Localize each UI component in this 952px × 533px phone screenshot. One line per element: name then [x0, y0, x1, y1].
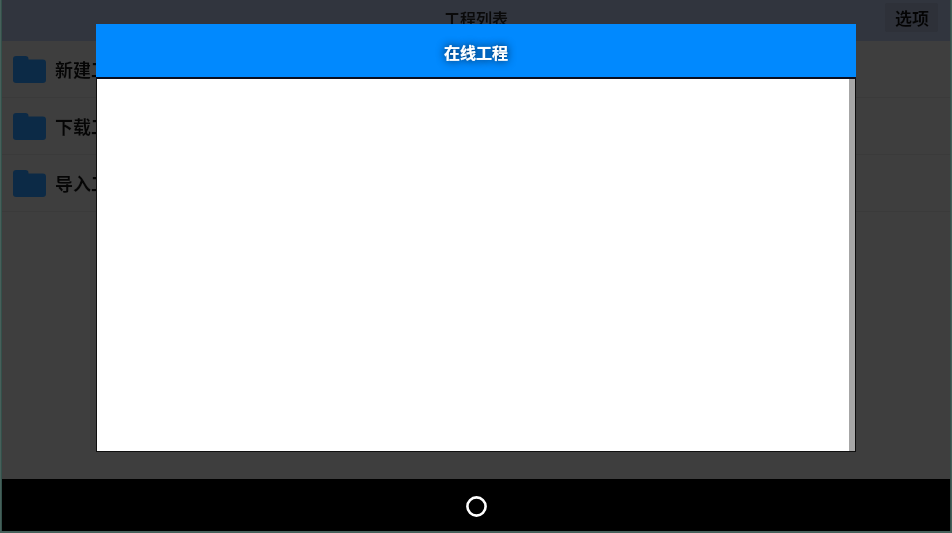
- staticText: 工程列表: [444, 6, 509, 29]
- staticText: 在线工程: [444, 40, 509, 63]
- staticText: 新建工程: [55, 56, 127, 82]
- staticText: 下载工程: [55, 113, 127, 139]
- staticText: 导入工程: [55, 170, 127, 196]
- button[interactable]: 新建工程: [0, 41, 952, 97]
- button[interactable]: 导入工程: [0, 155, 952, 211]
- button[interactable]: Home: [456, 486, 496, 526]
- staticText: 选项: [895, 5, 929, 30]
- button[interactable]: 选项: [885, 3, 938, 32]
- button[interactable]: 下载工程: [0, 98, 952, 154]
